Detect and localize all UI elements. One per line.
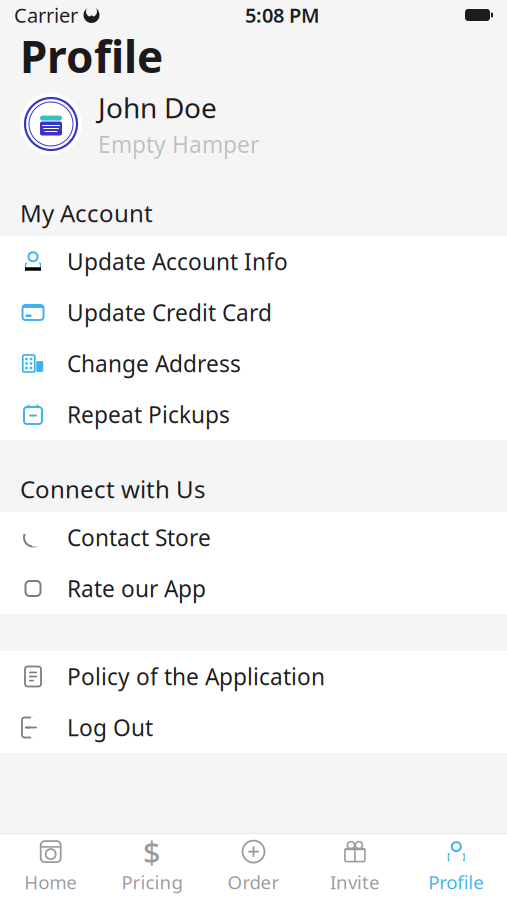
button[interactable]: Repeat Pickups [0, 389, 507, 440]
button[interactable]: Home [0, 834, 101, 900]
staticText: Connect with Us [20, 473, 205, 505]
staticText: Profile [428, 870, 484, 894]
button[interactable]: Log Out [0, 702, 507, 753]
staticText: Contact Store [67, 522, 211, 552]
staticText: Empty Hamper [98, 129, 259, 159]
button[interactable]: Contact Store [0, 512, 507, 563]
staticText: Log Out [67, 712, 153, 742]
button[interactable]: Update Account Info [0, 236, 507, 287]
staticText: Pricing [122, 870, 183, 894]
staticText: Invite [330, 870, 380, 894]
staticText: Policy of the Application [67, 661, 325, 691]
staticText: John Doe [98, 89, 217, 126]
staticText: Profile [20, 27, 163, 85]
button[interactable]: $ [101, 834, 203, 900]
button[interactable]: Order [203, 834, 304, 900]
staticText: Change Address [67, 348, 241, 378]
button[interactable]: Change Address [0, 338, 507, 389]
staticText: Rate our App [67, 573, 206, 603]
staticText: 5:08 PM [245, 2, 320, 28]
staticText: Order [227, 870, 279, 894]
button[interactable]: Update Credit Card [0, 287, 507, 338]
staticText: My Account [20, 197, 153, 229]
staticText: Home [24, 870, 77, 894]
staticText: $ [143, 831, 161, 872]
staticText: Carrier [14, 2, 78, 28]
staticText: Update Account Info [67, 246, 288, 276]
staticText: Repeat Pickups [67, 399, 230, 429]
button[interactable]: Invite [304, 834, 406, 900]
staticText: Update Credit Card [67, 297, 272, 327]
button[interactable]: Policy of the Application [0, 651, 507, 702]
button[interactable]: Rate our App [0, 563, 507, 614]
button[interactable]: Profile [406, 834, 507, 900]
